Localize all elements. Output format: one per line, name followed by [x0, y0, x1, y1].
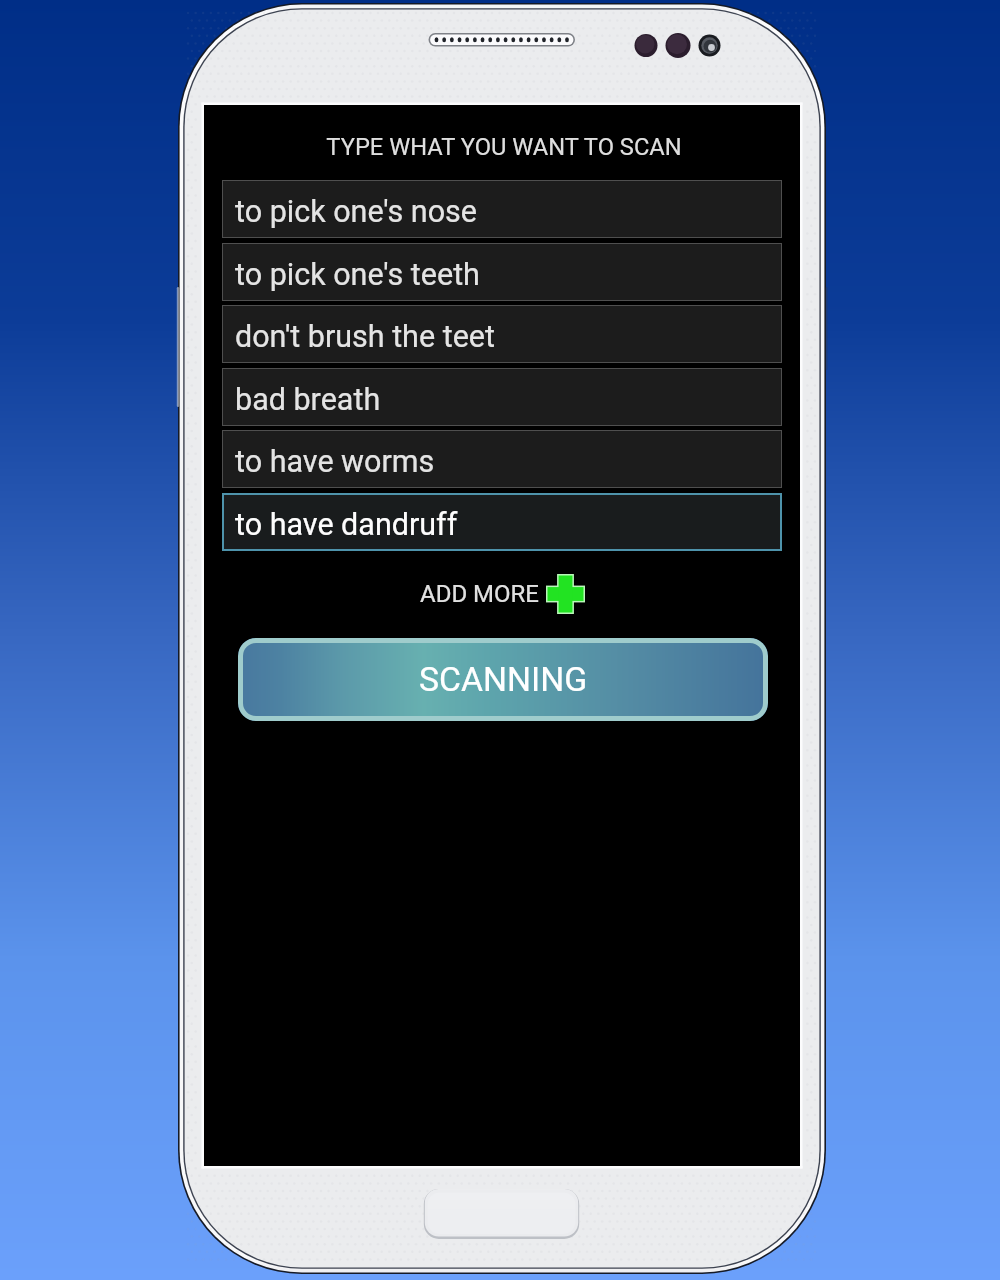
staticText: don't brush the teet [235, 319, 495, 355]
button[interactable]: to pick one's nose [222, 180, 782, 238]
staticText: to pick one's nose [235, 194, 477, 230]
button[interactable]: SCANNING [238, 638, 768, 721]
staticText: to have worms [235, 444, 435, 480]
button[interactable]: to have dandruff [222, 493, 782, 551]
button[interactable]: to have worms [222, 430, 782, 488]
staticText: SCANNING [419, 660, 588, 699]
button[interactable]: don't brush the teet [222, 305, 782, 363]
button[interactable]: to pick one's teeth [222, 243, 782, 301]
staticText: bad breath [235, 382, 381, 418]
staticText: to pick one's teeth [235, 257, 480, 293]
staticText: to have dandruff [235, 507, 458, 543]
button[interactable]: Add more [420, 570, 585, 618]
staticText: ADD MORE [420, 580, 540, 608]
button[interactable]: bad breath [222, 368, 782, 426]
staticText: TYPE WHAT YOU WANT TO SCAN [326, 133, 682, 161]
